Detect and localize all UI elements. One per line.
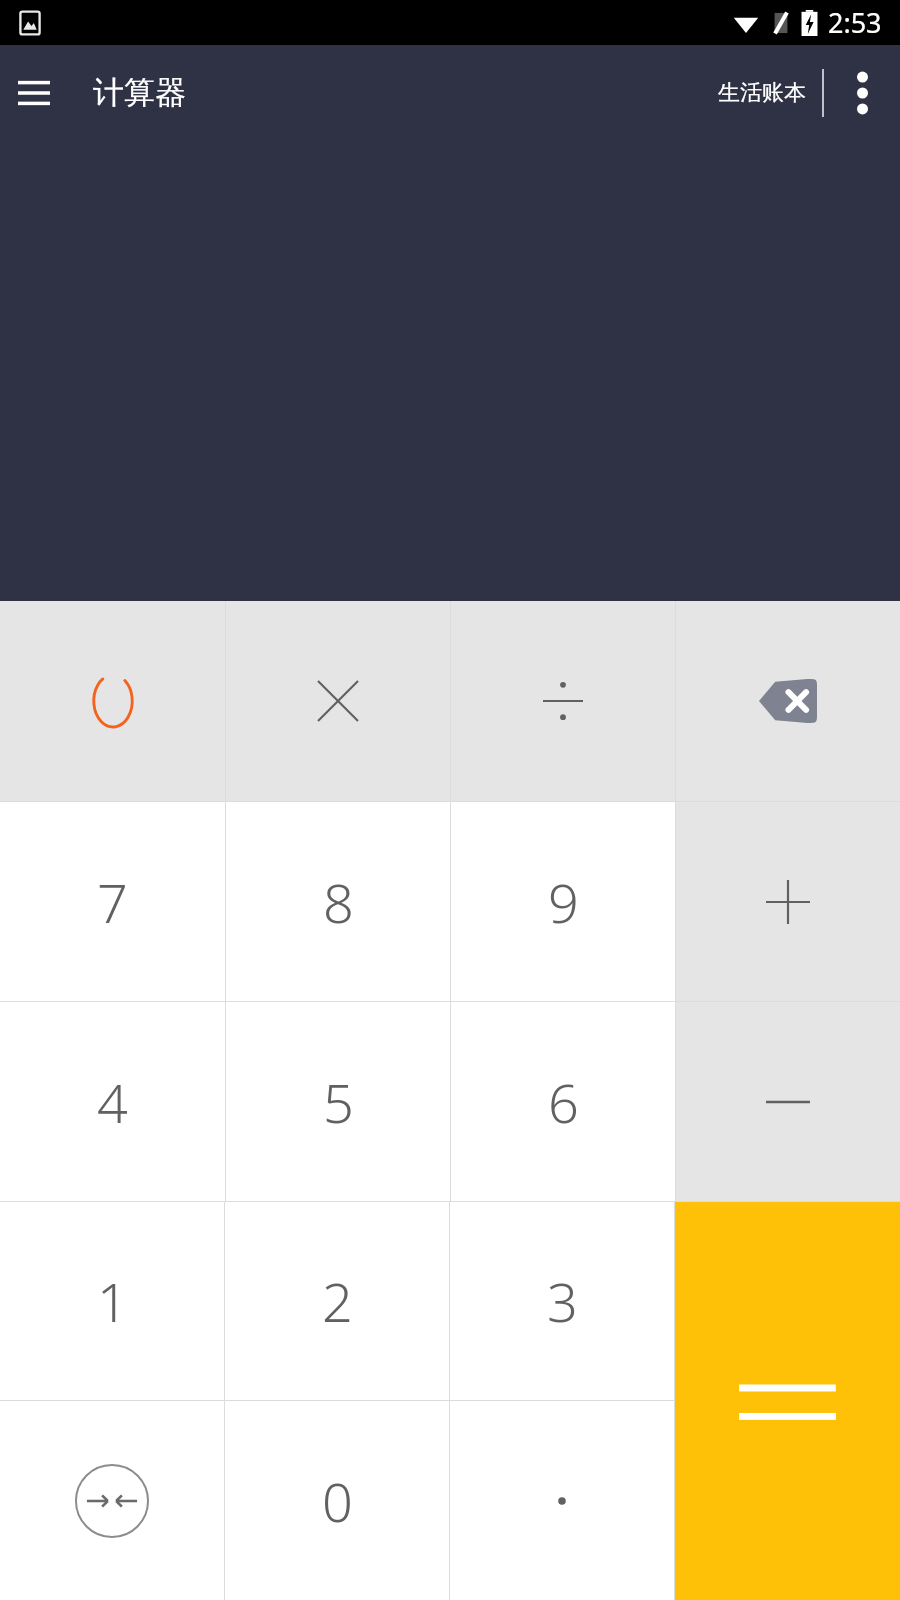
button[interactable]: Collapse <box>0 1401 224 1600</box>
staticText: 7 <box>97 865 128 939</box>
staticText: 4 <box>97 1065 128 1139</box>
button[interactable]: More options <box>824 55 900 131</box>
button[interactable]: Menu <box>4 63 64 123</box>
button[interactable]: 2 <box>225 1202 449 1400</box>
staticText: 6 <box>548 1065 579 1139</box>
button[interactable]: 生活账本 <box>702 59 822 127</box>
staticText: 0 <box>322 1464 353 1538</box>
button[interactable]: 0 <box>225 1401 449 1600</box>
button[interactable]: Equals <box>675 1202 900 1600</box>
staticText: 8 <box>323 865 354 939</box>
button[interactable]: 8 <box>226 802 450 1001</box>
button[interactable]: Minus <box>676 1002 900 1201</box>
staticText: 2 <box>322 1264 353 1338</box>
button[interactable]: Divide <box>451 601 675 801</box>
button[interactable]: Multiply <box>226 601 450 801</box>
button[interactable]: 6 <box>451 1002 675 1201</box>
button[interactable]: Decimal point <box>450 1401 674 1600</box>
button[interactable]: Clear <box>0 601 225 801</box>
button[interactable]: 3 <box>450 1202 674 1400</box>
button[interactable]: Backspace <box>676 601 900 801</box>
button[interactable]: 7 <box>0 802 225 1001</box>
staticText: 5 <box>323 1065 354 1139</box>
staticText: 3 <box>547 1264 578 1338</box>
staticText: 计算器 <box>93 73 186 112</box>
staticText: 9 <box>548 865 579 939</box>
staticText: 1 <box>97 1264 128 1338</box>
button[interactable]: 5 <box>226 1002 450 1201</box>
button[interactable]: Plus <box>676 802 900 1001</box>
button[interactable]: 1 <box>0 1202 224 1400</box>
button[interactable]: 9 <box>451 802 675 1001</box>
staticText: 2:53 <box>828 4 882 41</box>
button[interactable]: 4 <box>0 1002 225 1201</box>
staticText: 生活账本 <box>718 79 806 107</box>
